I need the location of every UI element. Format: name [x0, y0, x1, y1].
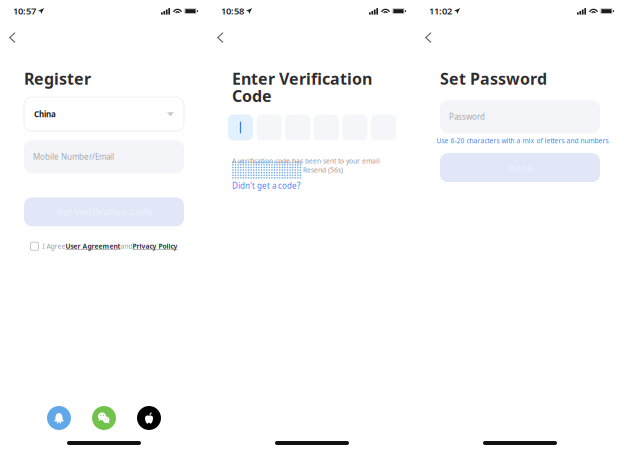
- staticText: Enter Verification: [232, 68, 372, 89]
- button[interactable]: Mobile Number/Email: [0, 140, 208, 173]
- staticText: 11:02: [429, 5, 452, 17]
- staticText: Register: [24, 68, 91, 89]
- button[interactable]: Password: [416, 100, 624, 133]
- button[interactable]: Sign in with QQ: [47, 406, 71, 430]
- staticText: China: [34, 109, 56, 119]
- staticText: Get Verification Code: [56, 206, 152, 218]
- staticText: Didn't get a code?: [232, 180, 300, 191]
- button[interactable]: Back: [416, 23, 445, 47]
- button[interactable]: Get Verification Code: [0, 197, 208, 226]
- button[interactable]: Didn't get a code?: [232, 180, 300, 191]
- button[interactable]: Back: [208, 23, 237, 47]
- staticText: User Agreement: [65, 242, 120, 251]
- staticText: Done: [508, 161, 532, 174]
- staticText: 10:57: [13, 5, 36, 17]
- staticText: 10:58: [221, 5, 244, 17]
- staticText: I Agree: [42, 242, 65, 251]
- button[interactable]: China: [0, 97, 208, 131]
- staticText: Password: [449, 111, 485, 122]
- button[interactable]: Sign in with WeChat: [92, 406, 116, 430]
- button[interactable]: Done: [416, 153, 624, 182]
- staticText: Code: [232, 85, 272, 106]
- staticText: Set Password: [440, 68, 547, 89]
- button[interactable]: Sign in with Apple: [137, 406, 161, 430]
- button[interactable]: I agree to the terms: [30, 239, 42, 253]
- staticText: and: [120, 242, 132, 251]
- button[interactable]: Verification digit 1: [228, 114, 253, 140]
- button[interactable]: Privacy Policy: [132, 242, 177, 251]
- button[interactable]: Back: [0, 23, 29, 47]
- staticText: Privacy Policy: [132, 242, 177, 251]
- staticText: Use 6-20 characters with a mix of letter…: [436, 136, 608, 145]
- button[interactable]: User Agreement: [65, 242, 120, 251]
- staticText: Resend (56s): [303, 165, 343, 174]
- staticText: Mobile Number/Email: [33, 151, 114, 162]
- staticText: A verification code has been sent to you…: [232, 156, 380, 165]
